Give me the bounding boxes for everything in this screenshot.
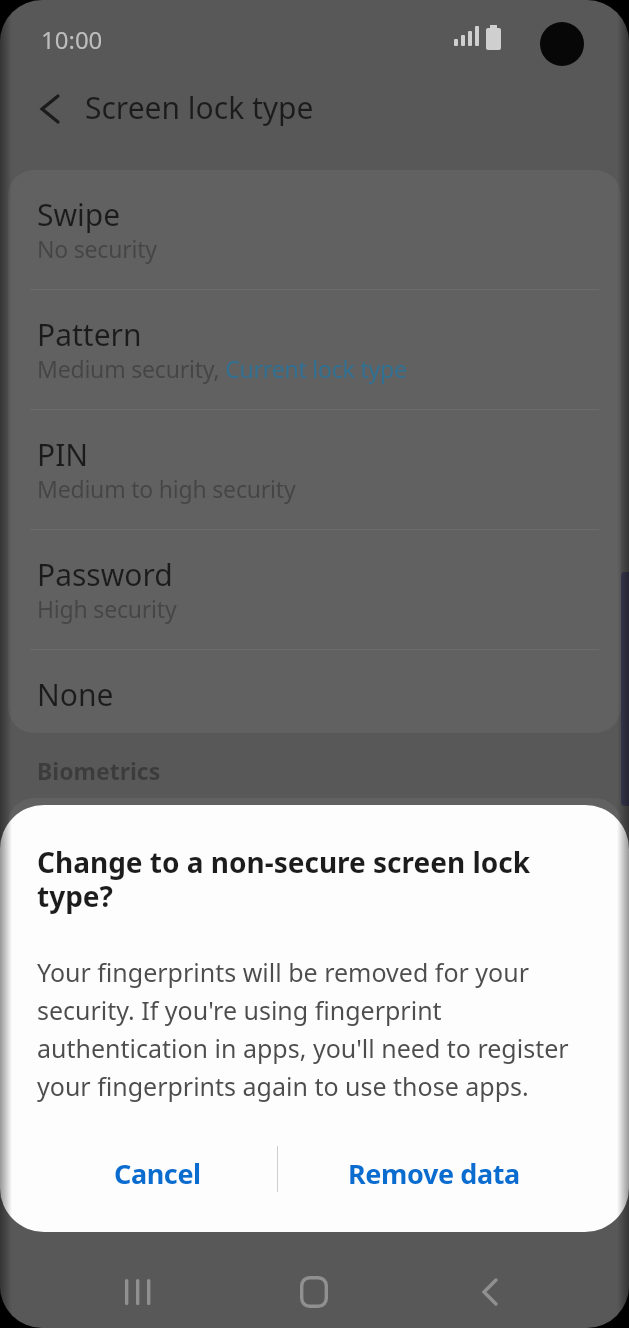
button[interactable]: None [8, 650, 621, 732]
staticText: Medium security, Current lock type [37, 353, 407, 384]
staticText: Swipe [37, 194, 121, 235]
button[interactable] [462, 1264, 518, 1320]
button[interactable]: Password [8, 530, 621, 649]
staticText: No security [37, 233, 157, 264]
button[interactable] [28, 85, 72, 133]
staticText: 10:00 [41, 23, 103, 56]
button[interactable] [110, 1264, 166, 1320]
button[interactable]: Pattern [8, 290, 621, 409]
staticText: Remove data [348, 1155, 520, 1192]
button[interactable]: Swipe [8, 170, 621, 289]
staticText: Medium to high security [37, 473, 296, 504]
button[interactable]: Cancel [57, 1143, 257, 1203]
staticText: Change to a non-secure screen lock type? [37, 843, 531, 916]
button[interactable]: PIN [8, 410, 621, 529]
button[interactable]: Remove data [334, 1143, 534, 1203]
staticText: PIN [37, 434, 89, 475]
button[interactable] [286, 1264, 342, 1320]
staticText: Your fingerprints will be removed for yo… [37, 955, 569, 1103]
staticText: None [37, 674, 114, 715]
staticText: Biometrics [37, 755, 161, 786]
staticText: High security [37, 593, 177, 624]
staticText: Cancel [114, 1155, 201, 1192]
staticText: Screen lock type [85, 87, 314, 128]
staticText: Password [37, 554, 173, 595]
staticText: Pattern [37, 314, 142, 355]
